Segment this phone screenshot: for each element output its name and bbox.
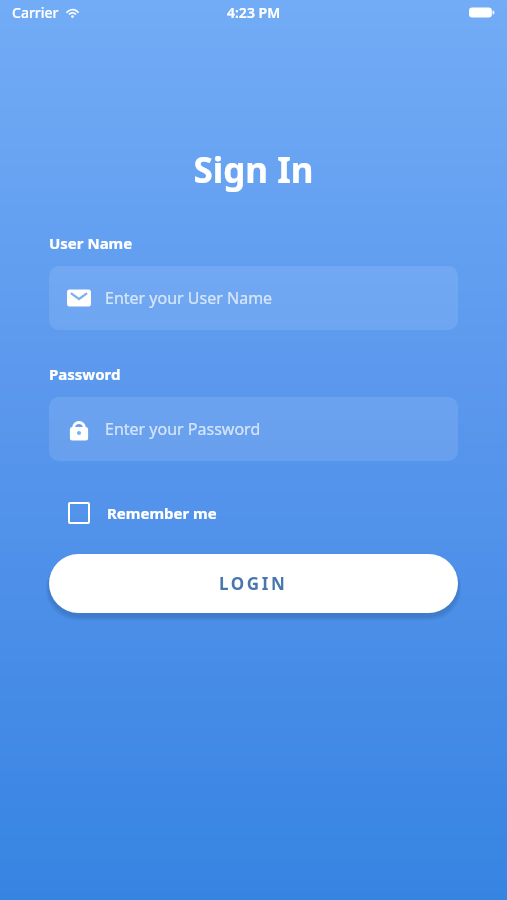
button[interactable]: Enter your Password (49, 397, 458, 461)
staticText: Enter your User Name (105, 287, 273, 309)
staticText: Remember me (107, 503, 217, 523)
button[interactable]: Enter your User Name (49, 266, 458, 330)
staticText: Carrier (12, 3, 59, 22)
staticText: Enter your Password (105, 418, 261, 440)
button[interactable]: Remember me (49, 495, 217, 531)
staticText: LOGIN (219, 572, 288, 595)
staticText: 4:23 PM (227, 3, 281, 22)
staticText: User Name (49, 233, 133, 253)
staticText: Password (49, 364, 121, 384)
staticText: Sign In (0, 146, 507, 194)
button[interactable]: LOGIN (49, 554, 458, 613)
